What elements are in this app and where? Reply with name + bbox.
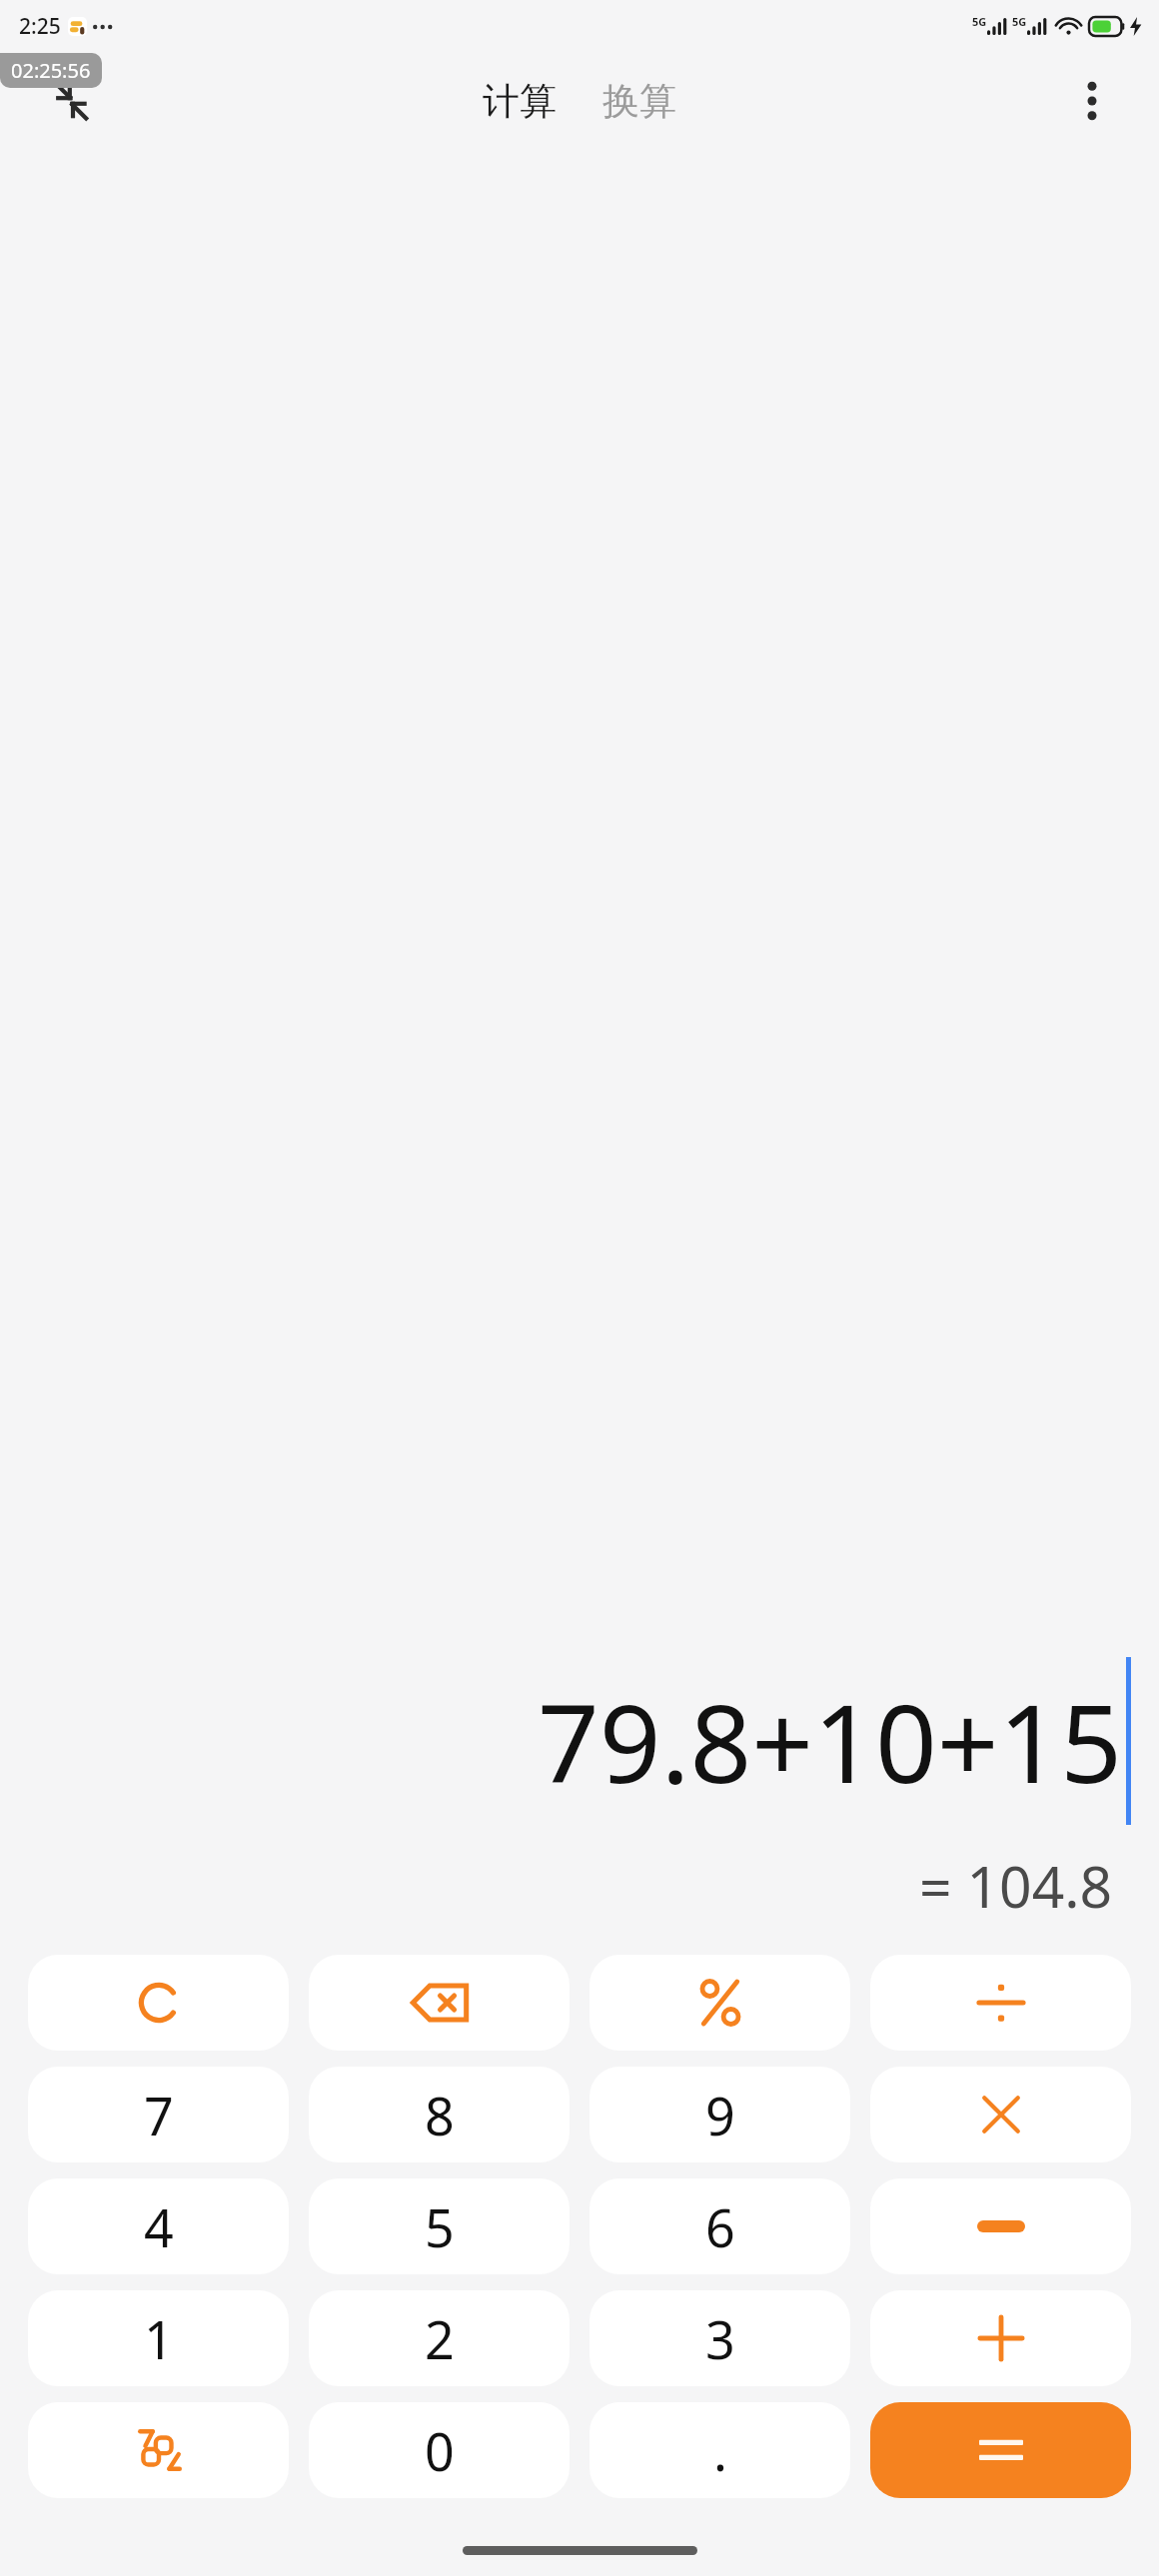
staticText: 9 [705,2080,735,2150]
staticText: 2:25 [19,12,61,41]
staticText: 5 [425,2191,455,2262]
button[interactable]: Scientific [28,2402,289,2498]
staticText: 4 [144,2191,174,2262]
staticText: 1 [144,2303,174,2374]
staticText: 5G [972,14,987,29]
staticText: 7 [144,2080,174,2150]
button[interactable]: Collapse [40,70,102,132]
button[interactable]: . [589,2402,850,2498]
button[interactable]: Backspace [309,1955,570,2051]
staticText: 5G [1012,14,1027,29]
button[interactable]: 3 [589,2290,850,2386]
staticText: 02:25:56 [11,57,91,84]
button[interactable]: 1 [28,2290,289,2386]
button[interactable]: 8 [309,2067,570,2162]
button[interactable]: 0 [309,2402,570,2498]
button[interactable]: 9 [589,2067,850,2162]
button[interactable]: 计算 [473,72,567,131]
button[interactable]: Minus [870,2178,1131,2274]
staticText: 6 [705,2191,735,2262]
staticText: 2 [425,2303,455,2374]
staticText: . [713,2415,727,2486]
button[interactable]: Divide [870,1955,1131,2051]
staticText: 计算 [483,78,557,125]
button[interactable]: Percent [589,1955,850,2051]
staticText: 8 [425,2080,455,2150]
button[interactable]: Multiply [870,2067,1131,2162]
staticText: 换算 [602,78,676,125]
button[interactable]: 7 [28,2067,289,2162]
button[interactable]: 4 [28,2178,289,2274]
button[interactable]: 6 [589,2178,850,2274]
button[interactable]: Plus [870,2290,1131,2386]
staticText: 79.8+10+15 [538,1668,1122,1815]
staticText: 0 [425,2415,455,2486]
button[interactable]: 2 [309,2290,570,2386]
button[interactable]: Equals [870,2402,1131,2498]
staticText: 3 [705,2303,735,2374]
button[interactable]: Clear [28,1955,289,2051]
button[interactable]: 5 [309,2178,570,2274]
button[interactable]: More options [1061,70,1123,132]
staticText: = 104.8 [919,1847,1113,1925]
button[interactable]: 换算 [592,72,686,131]
